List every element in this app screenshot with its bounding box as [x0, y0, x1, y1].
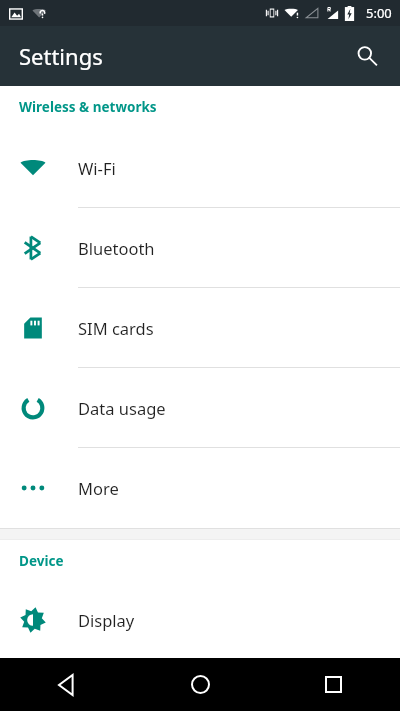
staticText: Data usage — [78, 397, 166, 419]
button[interactable]: Data usage — [0, 368, 400, 448]
staticText: Wireless & networks — [19, 98, 157, 116]
staticText: SIM cards — [78, 317, 154, 339]
button[interactable]: Wi-Fi — [0, 128, 400, 208]
staticText: Bluetooth — [78, 237, 155, 259]
button[interactable]: Search — [345, 34, 389, 78]
staticText: Settings — [19, 41, 103, 71]
staticText: 5:00 — [366, 4, 392, 22]
button[interactable]: Bluetooth — [0, 208, 400, 288]
button[interactable]: Recent apps — [267, 658, 400, 711]
button[interactable]: Display — [0, 582, 400, 658]
button[interactable]: SIM cards — [0, 288, 400, 368]
staticText: Device — [19, 552, 64, 570]
button[interactable]: Home — [134, 658, 267, 711]
button[interactable]: Back — [0, 658, 134, 711]
button[interactable]: More — [0, 448, 400, 528]
staticText: Display — [78, 609, 135, 631]
staticText: Wi-Fi — [78, 157, 116, 179]
staticText: More — [78, 477, 119, 499]
